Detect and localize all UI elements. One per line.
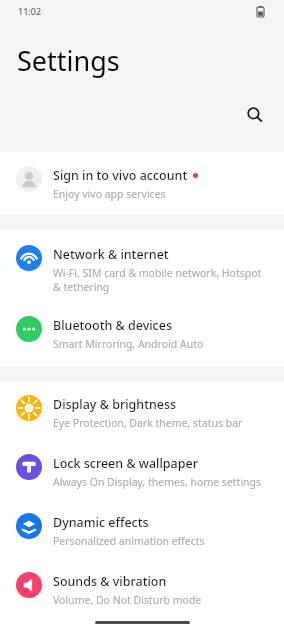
staticText: Sounds & vibration (53, 573, 167, 590)
staticText: Display & brightness (53, 396, 177, 413)
staticText: Lock screen & wallpaper (53, 455, 198, 472)
button[interactable]: Dynamic effects (0, 501, 284, 560)
staticText: Bluetooth & devices (53, 317, 172, 334)
staticText: Smart Mirroring, Android Auto (53, 337, 204, 351)
staticText: Dynamic effects (53, 514, 149, 531)
button[interactable]: Search (236, 96, 272, 132)
staticText: Settings (17, 42, 120, 79)
button[interactable]: Sounds & vibration (0, 560, 284, 619)
staticText: Volume, Do Not Disturb mode (53, 593, 202, 607)
staticText: Enjoy vivo app services (53, 187, 166, 201)
staticText: Always On Display, themes, home settings (53, 475, 262, 489)
button[interactable]: Bluetooth & devices (0, 304, 284, 367)
staticText: Wi-Fi, SIM card & mobile network, Hotspo… (53, 266, 270, 294)
staticText: Network & internet (53, 246, 169, 263)
button[interactable]: Lock screen & wallpaper (0, 442, 284, 501)
button[interactable]: Sign in to vivo account (0, 152, 284, 215)
staticText: Personalized animation effects (53, 534, 205, 548)
staticText: 11:02 (18, 5, 42, 17)
button[interactable]: Display & brightness (0, 381, 284, 442)
staticText: Sign in to vivo account (53, 167, 188, 184)
button[interactable]: Network & internet (0, 229, 284, 304)
staticText: Eye Protection, Dark theme, status bar (53, 416, 243, 430)
